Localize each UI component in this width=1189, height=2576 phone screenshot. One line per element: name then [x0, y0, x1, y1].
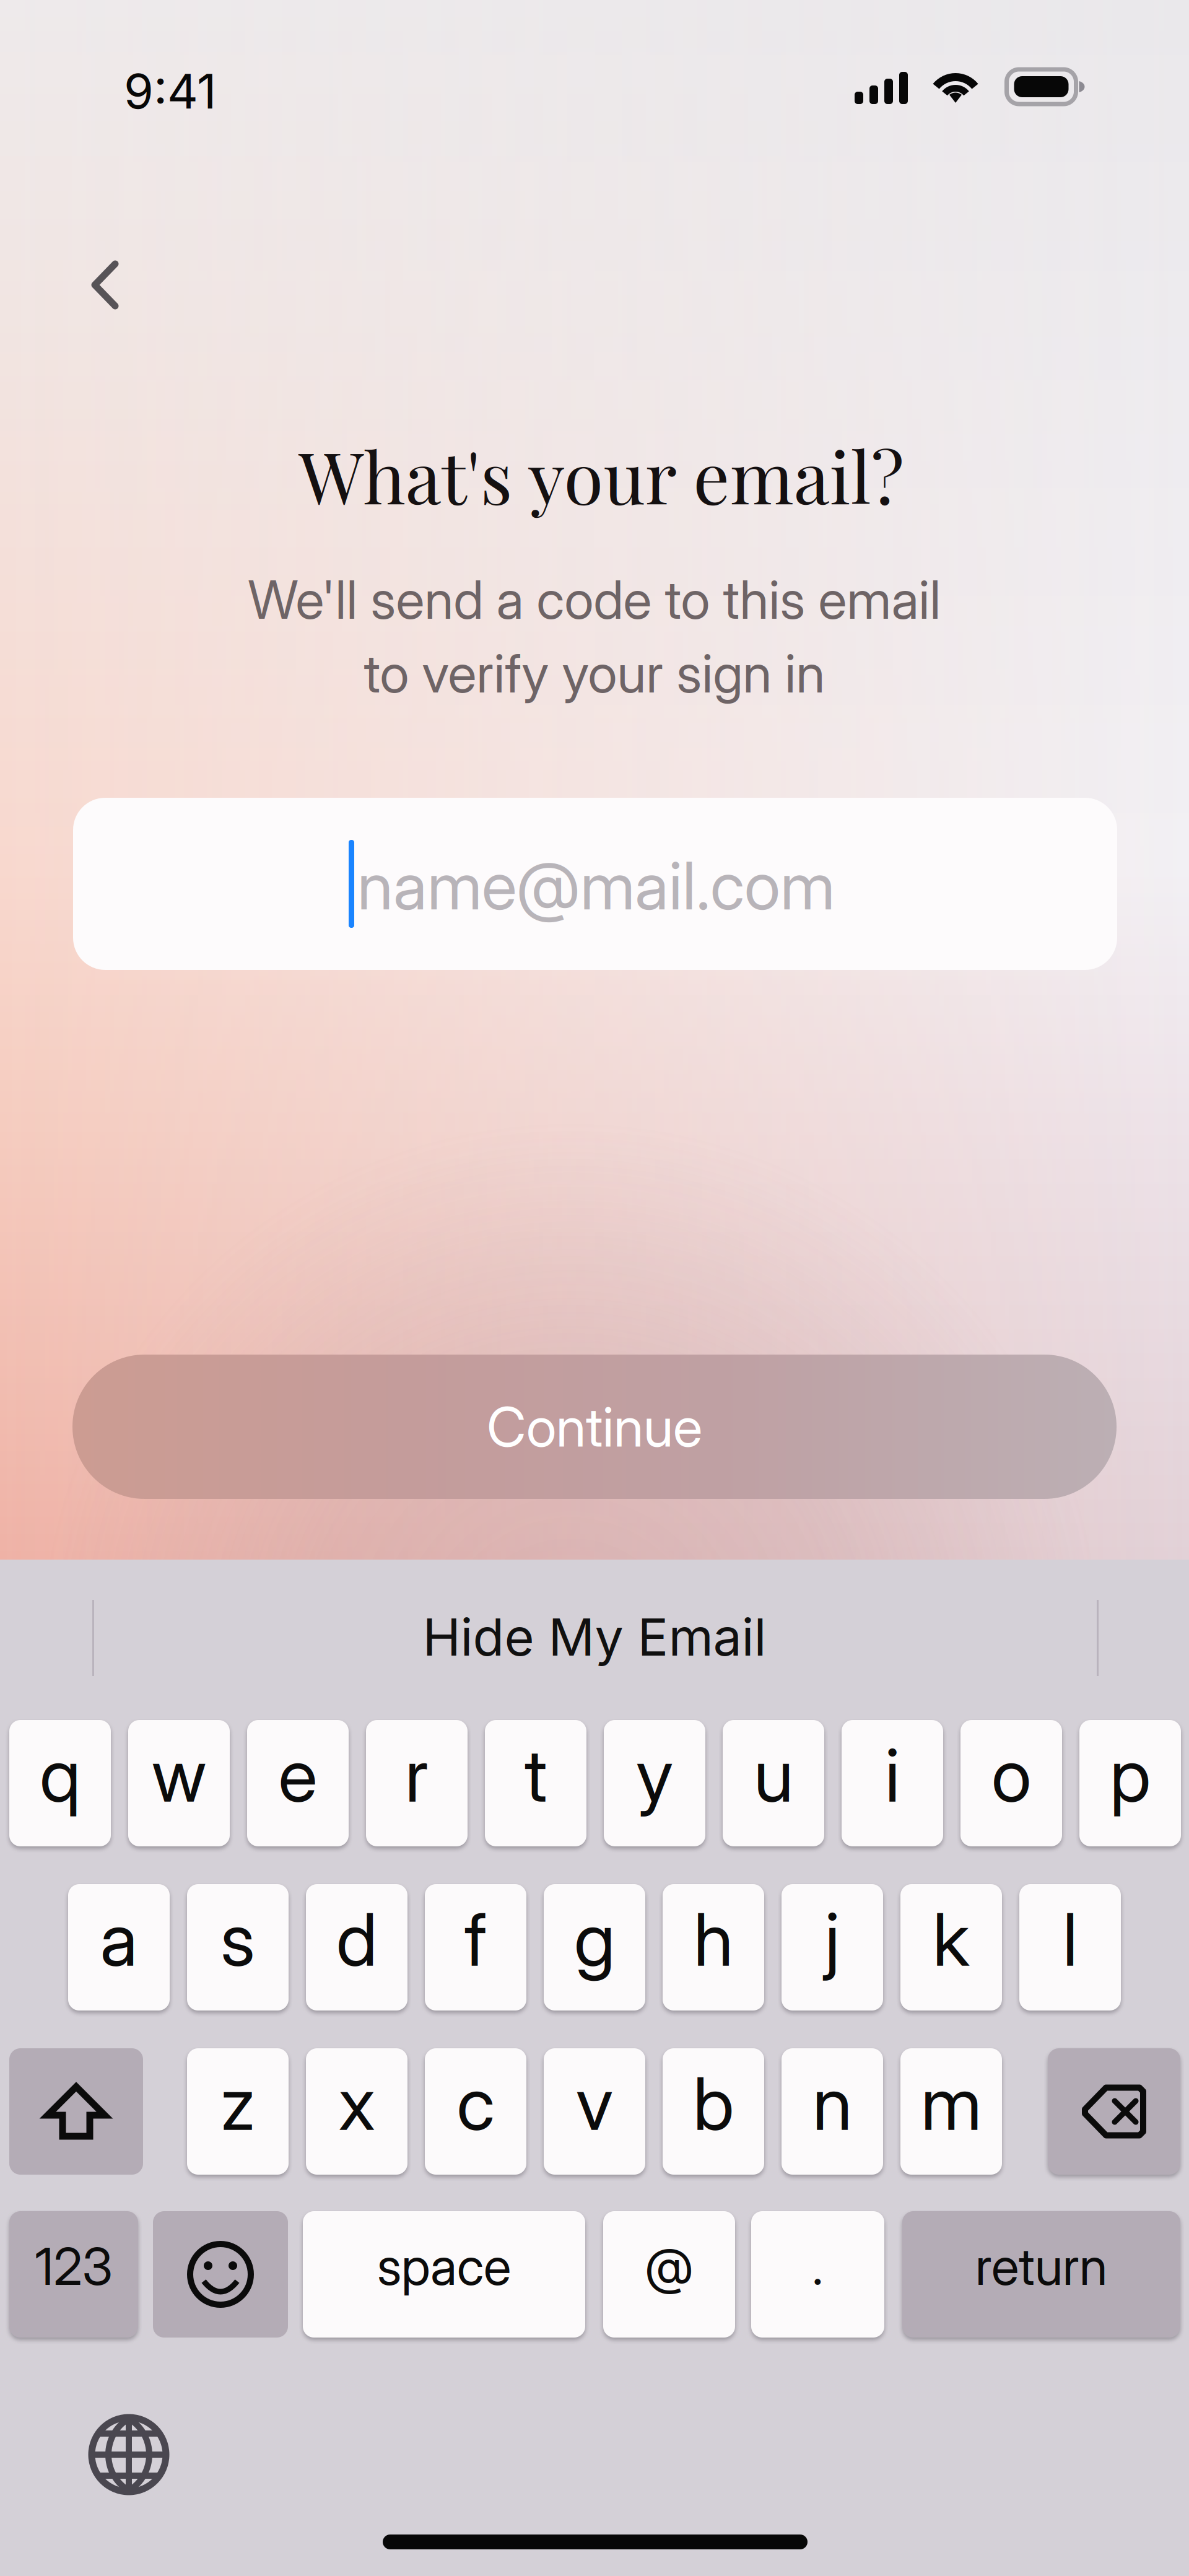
staticText: j: [825, 1895, 840, 1983]
staticText: What's your email?: [299, 427, 904, 522]
staticText: b: [693, 2059, 734, 2147]
button[interactable]: a: [68, 1884, 170, 2011]
staticText: v: [576, 2059, 613, 2147]
staticText: u: [754, 1731, 793, 1819]
button[interactable]: Hide My Email: [0, 1607, 1189, 1667]
staticText: @: [645, 2236, 693, 2296]
button[interactable]: e: [247, 1720, 349, 1846]
staticText: a: [100, 1895, 138, 1983]
button[interactable]: @: [603, 2211, 735, 2338]
button[interactable]: b: [663, 2048, 764, 2175]
staticText: t: [525, 1731, 547, 1819]
button[interactable]: 123: [9, 2211, 138, 2338]
button[interactable]: space: [303, 2211, 585, 2338]
staticText: c: [457, 2059, 494, 2147]
staticText: x: [338, 2059, 375, 2147]
button[interactable]: .: [751, 2211, 884, 2338]
staticText: We'll send a code to this email: [248, 568, 941, 632]
button[interactable]: u: [723, 1720, 824, 1846]
staticText: Hide My Email: [423, 1606, 766, 1668]
staticText: i: [885, 1731, 900, 1819]
button[interactable]: g: [544, 1884, 645, 2011]
button[interactable]: s: [187, 1884, 289, 2011]
staticText: k: [933, 1895, 970, 1983]
button[interactable]: n: [782, 2048, 883, 2175]
staticText: g: [574, 1895, 615, 1983]
staticText: f: [464, 1895, 487, 1983]
staticText: name@mail.com: [357, 846, 835, 925]
button[interactable]: Continue: [72, 1355, 1117, 1499]
button[interactable]: return: [902, 2211, 1180, 2338]
button[interactable]: y: [604, 1720, 705, 1846]
staticText: 123: [35, 2235, 112, 2297]
button[interactable]: Switch keyboard: [76, 2402, 181, 2507]
staticText: 9:41: [124, 62, 216, 120]
button[interactable]: d: [306, 1884, 407, 2011]
staticText: h: [694, 1895, 733, 1983]
staticText: .: [812, 2236, 823, 2296]
staticText: Continue: [487, 1394, 702, 1460]
button[interactable]: Shift: [9, 2048, 143, 2175]
button[interactable]: j: [782, 1884, 883, 2011]
button[interactable]: p: [1079, 1720, 1181, 1846]
button[interactable]: l: [1019, 1884, 1121, 2011]
button[interactable]: Back: [69, 249, 141, 321]
staticText: z: [220, 2059, 255, 2147]
button[interactable]: c: [425, 2048, 526, 2175]
button[interactable]: t: [485, 1720, 586, 1846]
button[interactable]: i: [842, 1720, 943, 1846]
button[interactable]: k: [900, 1884, 1002, 2011]
button[interactable]: f: [425, 1884, 526, 2011]
staticText: d: [336, 1895, 377, 1983]
staticText: s: [220, 1895, 255, 1983]
button[interactable]: Emoji: [153, 2211, 288, 2338]
button[interactable]: o: [960, 1720, 1062, 1846]
button[interactable]: x: [306, 2048, 407, 2175]
staticText: n: [812, 2059, 852, 2147]
staticText: o: [991, 1731, 1031, 1819]
staticText: w: [152, 1731, 206, 1819]
button[interactable]: Delete: [1048, 2048, 1180, 2175]
staticText: r: [405, 1731, 429, 1819]
staticText: l: [1063, 1895, 1078, 1983]
staticText: p: [1110, 1731, 1151, 1819]
button[interactable]: w: [128, 1720, 230, 1846]
staticText: y: [636, 1731, 673, 1819]
button[interactable]: h: [663, 1884, 764, 2011]
staticText: space: [377, 2235, 511, 2297]
button[interactable]: z: [187, 2048, 289, 2175]
staticText: e: [278, 1731, 317, 1819]
button[interactable]: v: [544, 2048, 645, 2175]
staticText: m: [921, 2059, 982, 2147]
button[interactable]: q: [9, 1720, 111, 1846]
staticText: to verify your sign in: [364, 641, 825, 705]
button[interactable]: r: [366, 1720, 468, 1846]
staticText: return: [975, 2235, 1107, 2297]
button[interactable]: m: [900, 2048, 1002, 2175]
staticText: q: [40, 1731, 81, 1819]
